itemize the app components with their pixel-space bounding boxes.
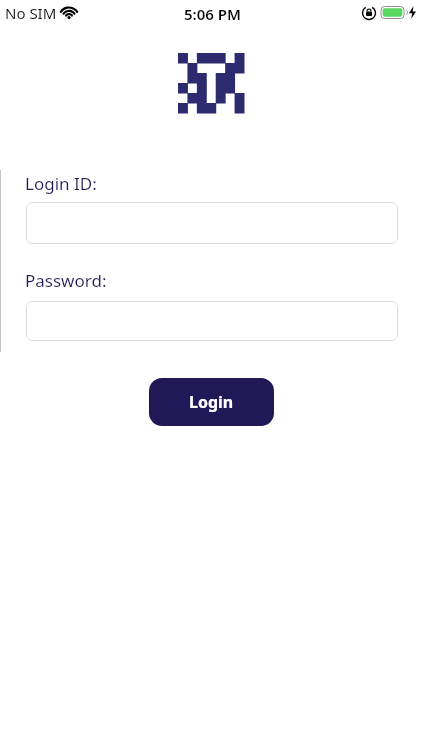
button[interactable] [26,202,398,244]
staticText: 5:06 PM [184,4,241,24]
staticText: No SIM [5,3,57,23]
staticText: Password: [25,269,107,292]
staticText: Login [189,391,234,413]
button[interactable]: Login [149,378,274,426]
button[interactable] [26,301,398,341]
staticText: Login ID: [25,172,97,195]
